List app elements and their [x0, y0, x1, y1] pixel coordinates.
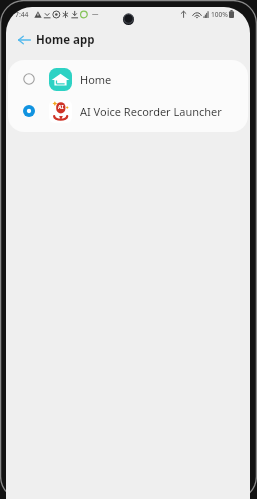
button[interactable]: Back — [13, 29, 35, 51]
staticText: AI — [58, 104, 64, 111]
button[interactable]: AI — [8, 95, 248, 127]
button[interactable]: Home — [8, 63, 248, 95]
staticText: 7:44 — [15, 10, 29, 19]
staticText: 100% — [211, 10, 228, 19]
staticText: Home — [80, 72, 112, 87]
staticText: AI Voice Recorder Launcher — [80, 104, 222, 119]
staticText: Home app — [36, 32, 95, 48]
